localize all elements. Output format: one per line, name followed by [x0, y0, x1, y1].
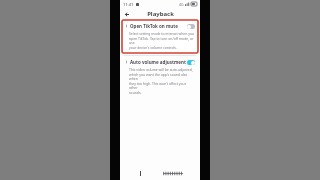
staticText: they too high. This won't affect your ot…	[129, 81, 195, 90]
staticText: Select setting mode to interact when you	[129, 31, 195, 36]
button[interactable]: Auto volume adjustment	[120, 58, 200, 96]
button[interactable]: Toggle off	[187, 24, 195, 29]
staticText: Open TikTok on mute	[130, 23, 186, 29]
button[interactable]: Back	[135, 168, 145, 178]
staticText: your device's volume controls.	[129, 45, 177, 50]
button[interactable]: Back	[122, 10, 131, 19]
button[interactable]: Home	[161, 168, 185, 178]
staticText: open TikTok. Tap to turn on/off mode, or…	[129, 36, 195, 45]
staticText: sounds.	[129, 90, 142, 95]
staticText: Playback	[147, 10, 174, 18]
button[interactable]: Toggle on	[187, 60, 195, 65]
staticText: This video volume will be auto-adjusted,	[129, 67, 193, 72]
staticText: 11:41	[123, 2, 134, 7]
staticText: Auto volume adjustment	[130, 59, 186, 65]
staticText: 4G	[179, 2, 184, 7]
button[interactable]: Open TikTok on mute	[122, 20, 198, 53]
staticText: which you want the app's sound also when	[129, 72, 195, 81]
